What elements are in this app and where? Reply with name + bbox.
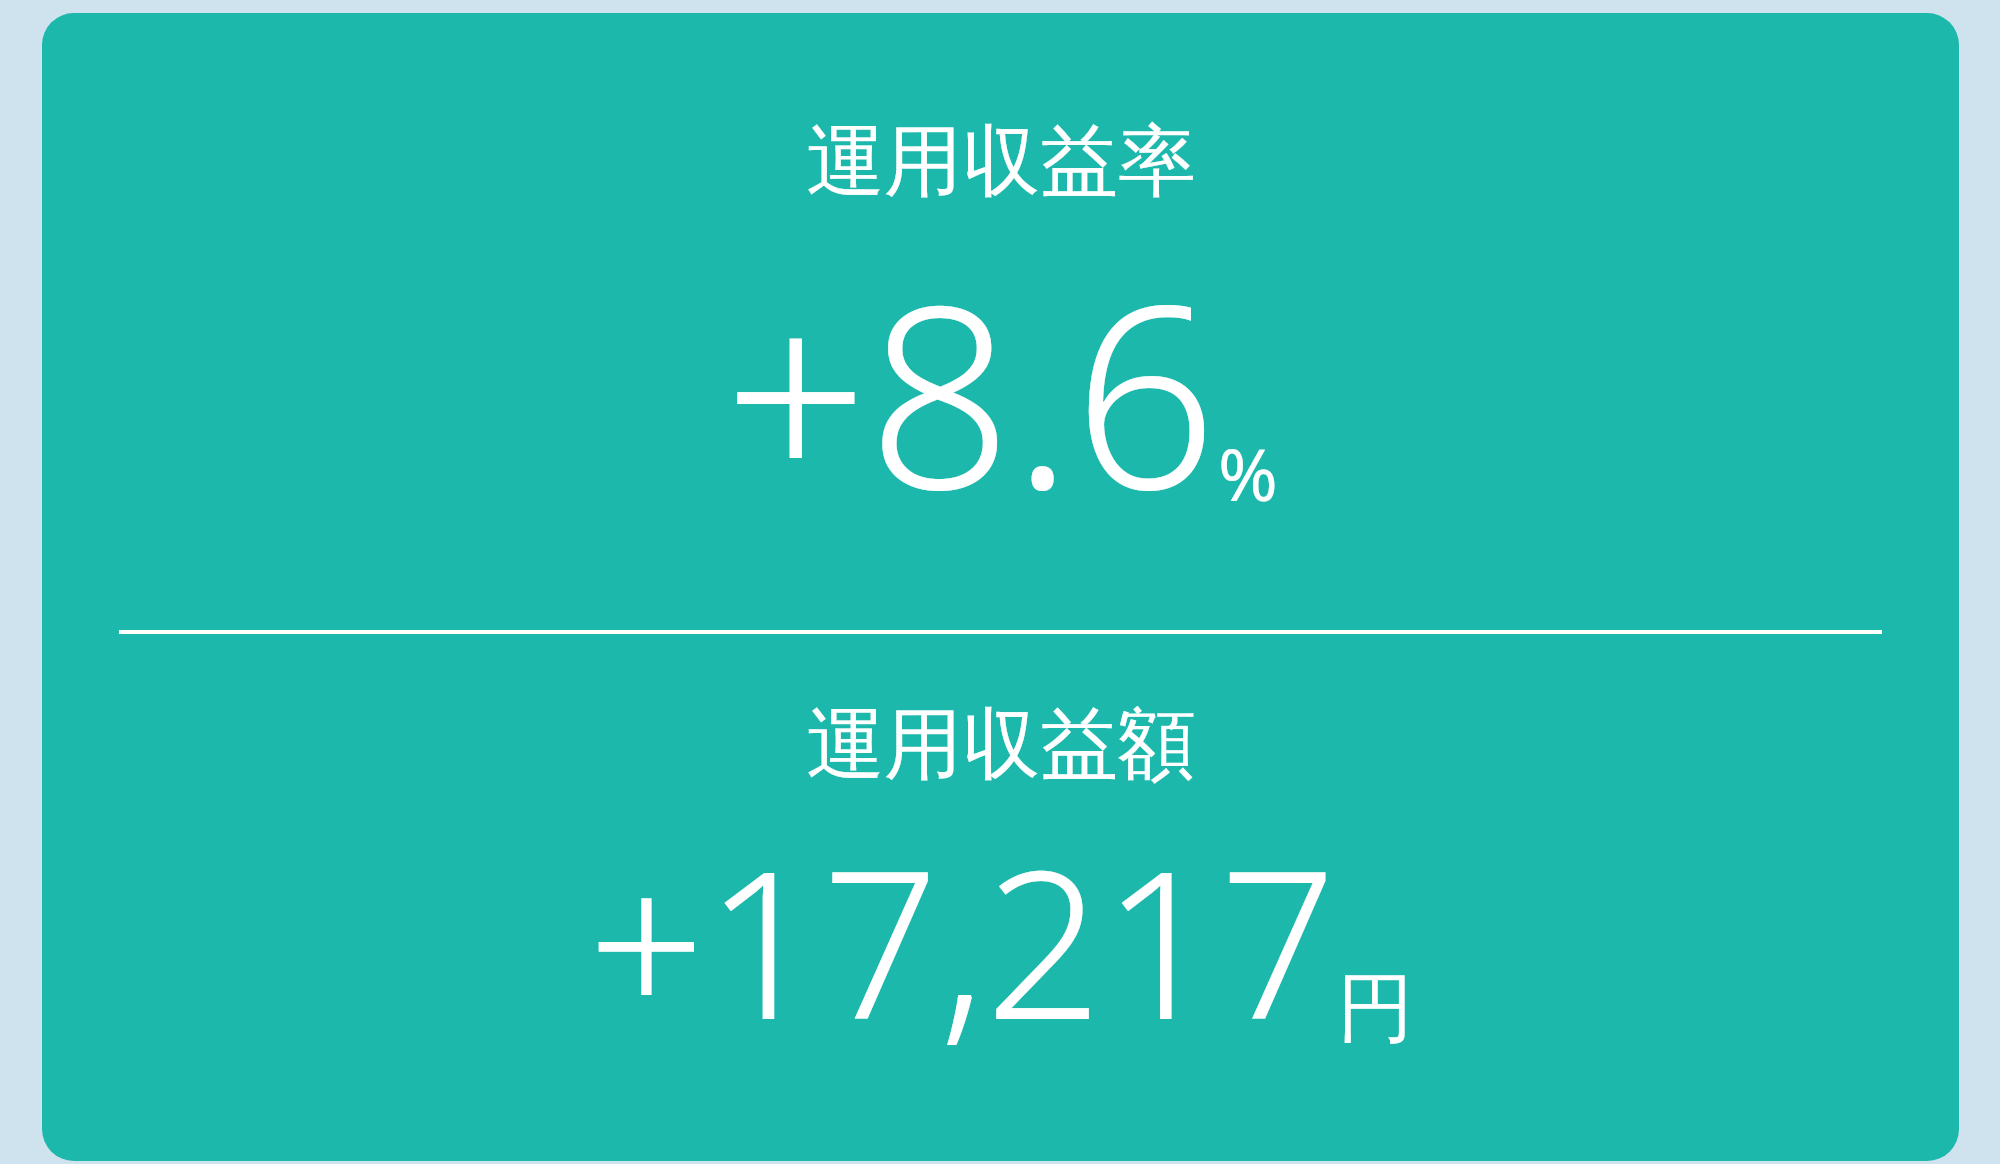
staticText: % [1218,424,1278,522]
staticText: 円 [1337,961,1413,1057]
staticText: 運用収益額 [806,696,1196,794]
staticText: +8.6 [724,219,1218,562]
staticText: 運用収益率 [806,113,1196,211]
staticText: +17,217 [588,800,1337,1079]
button[interactable]: 運用収益率 [42,13,1959,1161]
